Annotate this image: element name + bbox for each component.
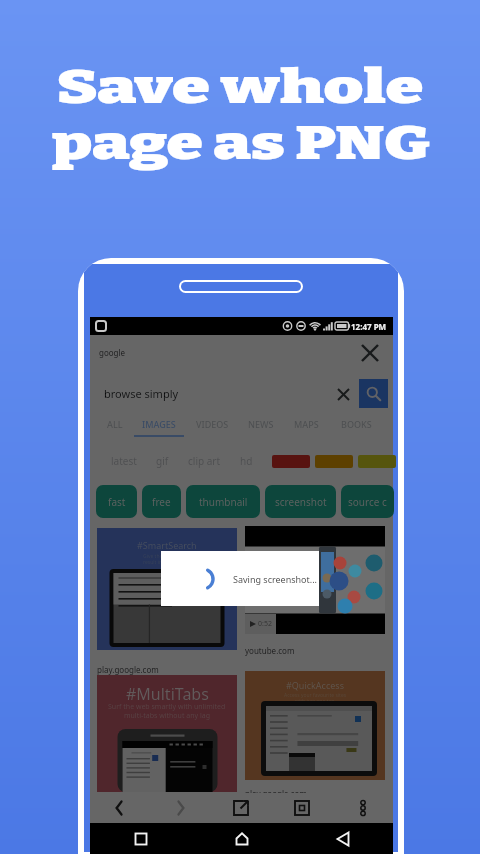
staticText: google	[99, 347, 126, 358]
staticText: source c	[348, 495, 387, 509]
staticText: play.google.com	[245, 788, 307, 799]
button[interactable]: hd	[240, 454, 253, 468]
staticText: clip art	[188, 454, 221, 468]
button[interactable]: IMAGES	[133, 412, 185, 439]
button[interactable]: MAPS	[283, 412, 329, 439]
staticText: youtube.com	[245, 645, 295, 656]
staticText: gif	[156, 454, 169, 468]
button[interactable]: screenshot	[265, 485, 336, 518]
staticText: 12:47 PM	[351, 321, 387, 332]
button[interactable]: thumbnail	[186, 485, 260, 518]
button[interactable]: #SmartSearch	[97, 528, 237, 650]
button[interactable]: Recents	[90, 823, 191, 854]
staticText: Surf the web smartly with unlimited	[108, 702, 226, 712]
staticText: hd	[240, 454, 253, 468]
button[interactable]: ALL	[97, 412, 133, 439]
staticText: fast	[108, 495, 126, 509]
staticText: latest	[111, 454, 137, 468]
button[interactable]	[358, 455, 396, 468]
button[interactable]: gif	[156, 454, 169, 468]
staticText: #SmartSearch	[137, 539, 197, 551]
button[interactable]: VIDEOS	[185, 412, 239, 439]
staticText: screenshot	[275, 495, 327, 509]
button[interactable]: Back	[292, 823, 393, 854]
staticText: multi-tabs without any lag	[124, 711, 210, 721]
staticText: thumbnail	[199, 495, 248, 509]
staticText: with just one tap	[295, 698, 335, 705]
button[interactable]: Home	[191, 823, 292, 854]
button[interactable]: More options	[332, 793, 393, 823]
button[interactable]: 0:52	[245, 526, 385, 634]
staticText: #MultiTabs	[126, 683, 209, 705]
button[interactable]: Back	[90, 793, 150, 823]
button[interactable]: Tabs	[271, 793, 332, 823]
button[interactable]: source c	[341, 485, 394, 518]
staticText: Give the best search	[143, 553, 191, 560]
staticText: browse simply	[104, 386, 179, 401]
staticText: IMAGES	[142, 418, 176, 430]
button[interactable]: Forward	[150, 793, 210, 823]
staticText: page as PNG	[51, 116, 430, 171]
button[interactable]: Search	[359, 379, 388, 408]
button[interactable]	[315, 455, 353, 468]
button[interactable]: browse simply	[95, 379, 359, 408]
button[interactable]: fast	[96, 485, 137, 518]
button[interactable]: NEWS	[239, 412, 283, 439]
staticText: #QuickAccess	[286, 679, 344, 691]
button[interactable]: free	[142, 485, 181, 518]
staticText: free	[152, 495, 171, 509]
button[interactable]: #MultiTabs	[97, 675, 237, 792]
staticText: NEWS	[248, 418, 274, 430]
staticText: Saving screenshot...	[233, 573, 318, 585]
button[interactable]	[272, 455, 310, 468]
staticText: BOOKS	[341, 418, 372, 430]
button[interactable]: #QuickAccess	[245, 671, 385, 780]
button[interactable]: BOOKS	[329, 412, 383, 439]
staticText: 0:52	[258, 619, 272, 629]
button[interactable]: clip art	[188, 454, 221, 468]
staticText: result in a single tap	[143, 559, 191, 566]
staticText: Save whole	[56, 60, 423, 115]
staticText: play.google.com	[97, 664, 159, 675]
staticText: ALL	[107, 418, 123, 430]
staticText: MAPS	[294, 418, 319, 430]
staticText: VIDEOS	[196, 418, 229, 430]
button[interactable]: latest	[111, 454, 137, 468]
button[interactable]: Share	[210, 793, 271, 823]
button[interactable]: Clear	[334, 385, 352, 403]
button[interactable]: Close	[357, 340, 383, 366]
staticText: Access your favourite sites	[284, 692, 347, 699]
